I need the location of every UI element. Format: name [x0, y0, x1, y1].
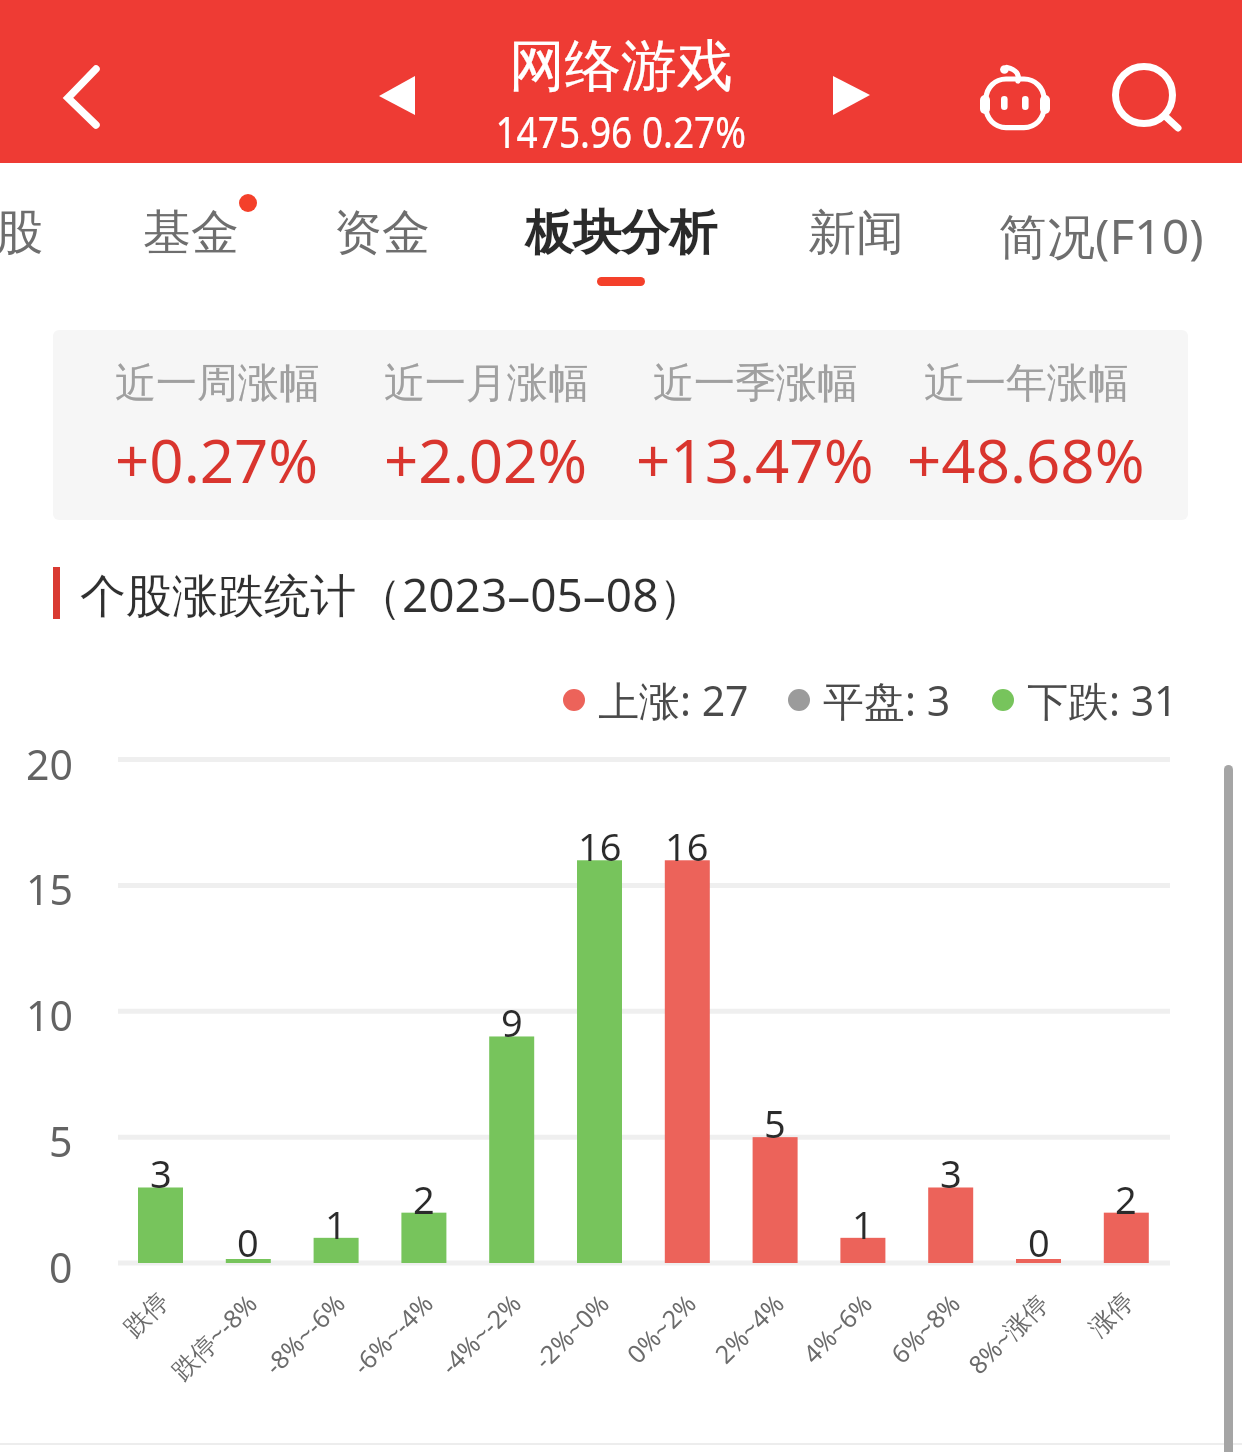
button[interactable]: Next sector	[795, 42, 903, 150]
staticText: 16	[578, 820, 622, 872]
staticText: 近一月涨幅	[384, 358, 589, 410]
staticText: 近一季涨幅	[653, 358, 858, 410]
staticText: 上涨: 27	[598, 672, 749, 728]
staticText: 0	[49, 1239, 73, 1295]
staticText: 个股涨跌统计（2023–05–08）	[80, 563, 705, 626]
staticText: +13.47%	[636, 419, 874, 501]
button[interactable]: 资金	[334, 175, 430, 287]
staticText: +2.02%	[384, 419, 588, 501]
staticText: 5	[49, 1113, 73, 1169]
staticText: 10	[26, 987, 73, 1043]
staticText: 2%~4%	[707, 1286, 791, 1370]
staticText: 6%~8%	[883, 1286, 967, 1370]
staticText: 1475.96 0.27%	[495, 102, 746, 161]
staticText: 0	[237, 1216, 259, 1268]
staticText: 2	[413, 1173, 435, 1225]
staticText: -6%~-4%	[345, 1286, 440, 1381]
button[interactable]	[53, 330, 1188, 520]
staticText: 2	[1115, 1173, 1137, 1225]
staticText: +48.68%	[907, 419, 1145, 501]
button[interactable]: 下跌: 31	[992, 672, 1178, 728]
button[interactable]: 平盘: 3	[788, 672, 951, 728]
button[interactable]: AI assistant	[957, 38, 1081, 162]
staticText: 板块分析	[525, 203, 717, 263]
staticText: 3	[940, 1147, 962, 1199]
button[interactable]: 上涨: 27	[563, 672, 749, 728]
staticText: 8%~涨停	[960, 1286, 1055, 1381]
button[interactable]: 简况(F10)	[999, 175, 1204, 287]
staticText: 9	[501, 996, 523, 1048]
staticText: 0	[1028, 1216, 1050, 1268]
button[interactable]: 板块分析	[525, 175, 717, 287]
staticText: 股	[0, 203, 43, 263]
button[interactable]: Search	[1088, 39, 1200, 151]
staticText: -2%~0%	[526, 1286, 616, 1376]
staticText: 新闻	[808, 203, 904, 263]
button[interactable]: 新闻	[808, 175, 904, 287]
staticText: 1	[852, 1198, 874, 1250]
staticText: 15	[26, 861, 73, 917]
staticText: 平盘: 3	[823, 672, 951, 728]
staticText: -8%~-6%	[257, 1286, 352, 1381]
staticText: 20	[26, 736, 73, 792]
staticText: 基金	[143, 203, 239, 263]
staticText: 5	[764, 1097, 786, 1149]
staticText: 资金	[334, 203, 430, 263]
staticText: 4%~6%	[795, 1286, 879, 1370]
staticText: -4%~-2%	[433, 1286, 528, 1381]
staticText: 3	[150, 1147, 172, 1199]
staticText: 下跌: 31	[1027, 672, 1178, 728]
button[interactable]: 基金	[143, 175, 239, 287]
staticText: 简况(F10)	[999, 203, 1204, 269]
button[interactable]: Back	[14, 42, 126, 154]
staticText: 16	[665, 820, 709, 872]
button[interactable]: Previous sector	[343, 42, 451, 150]
staticText: 近一周涨幅	[115, 358, 320, 410]
staticText: +0.27%	[115, 419, 319, 501]
staticText: 跌停	[118, 1286, 175, 1343]
staticText: 近一年涨幅	[924, 358, 1129, 410]
staticText: 0%~2%	[619, 1286, 703, 1370]
staticText: 跌停~-8%	[164, 1286, 264, 1386]
button[interactable]: 股	[0, 175, 43, 287]
staticText: 1	[325, 1198, 347, 1250]
staticText: 涨停	[1083, 1286, 1140, 1343]
staticText: 网络游戏	[509, 31, 733, 102]
